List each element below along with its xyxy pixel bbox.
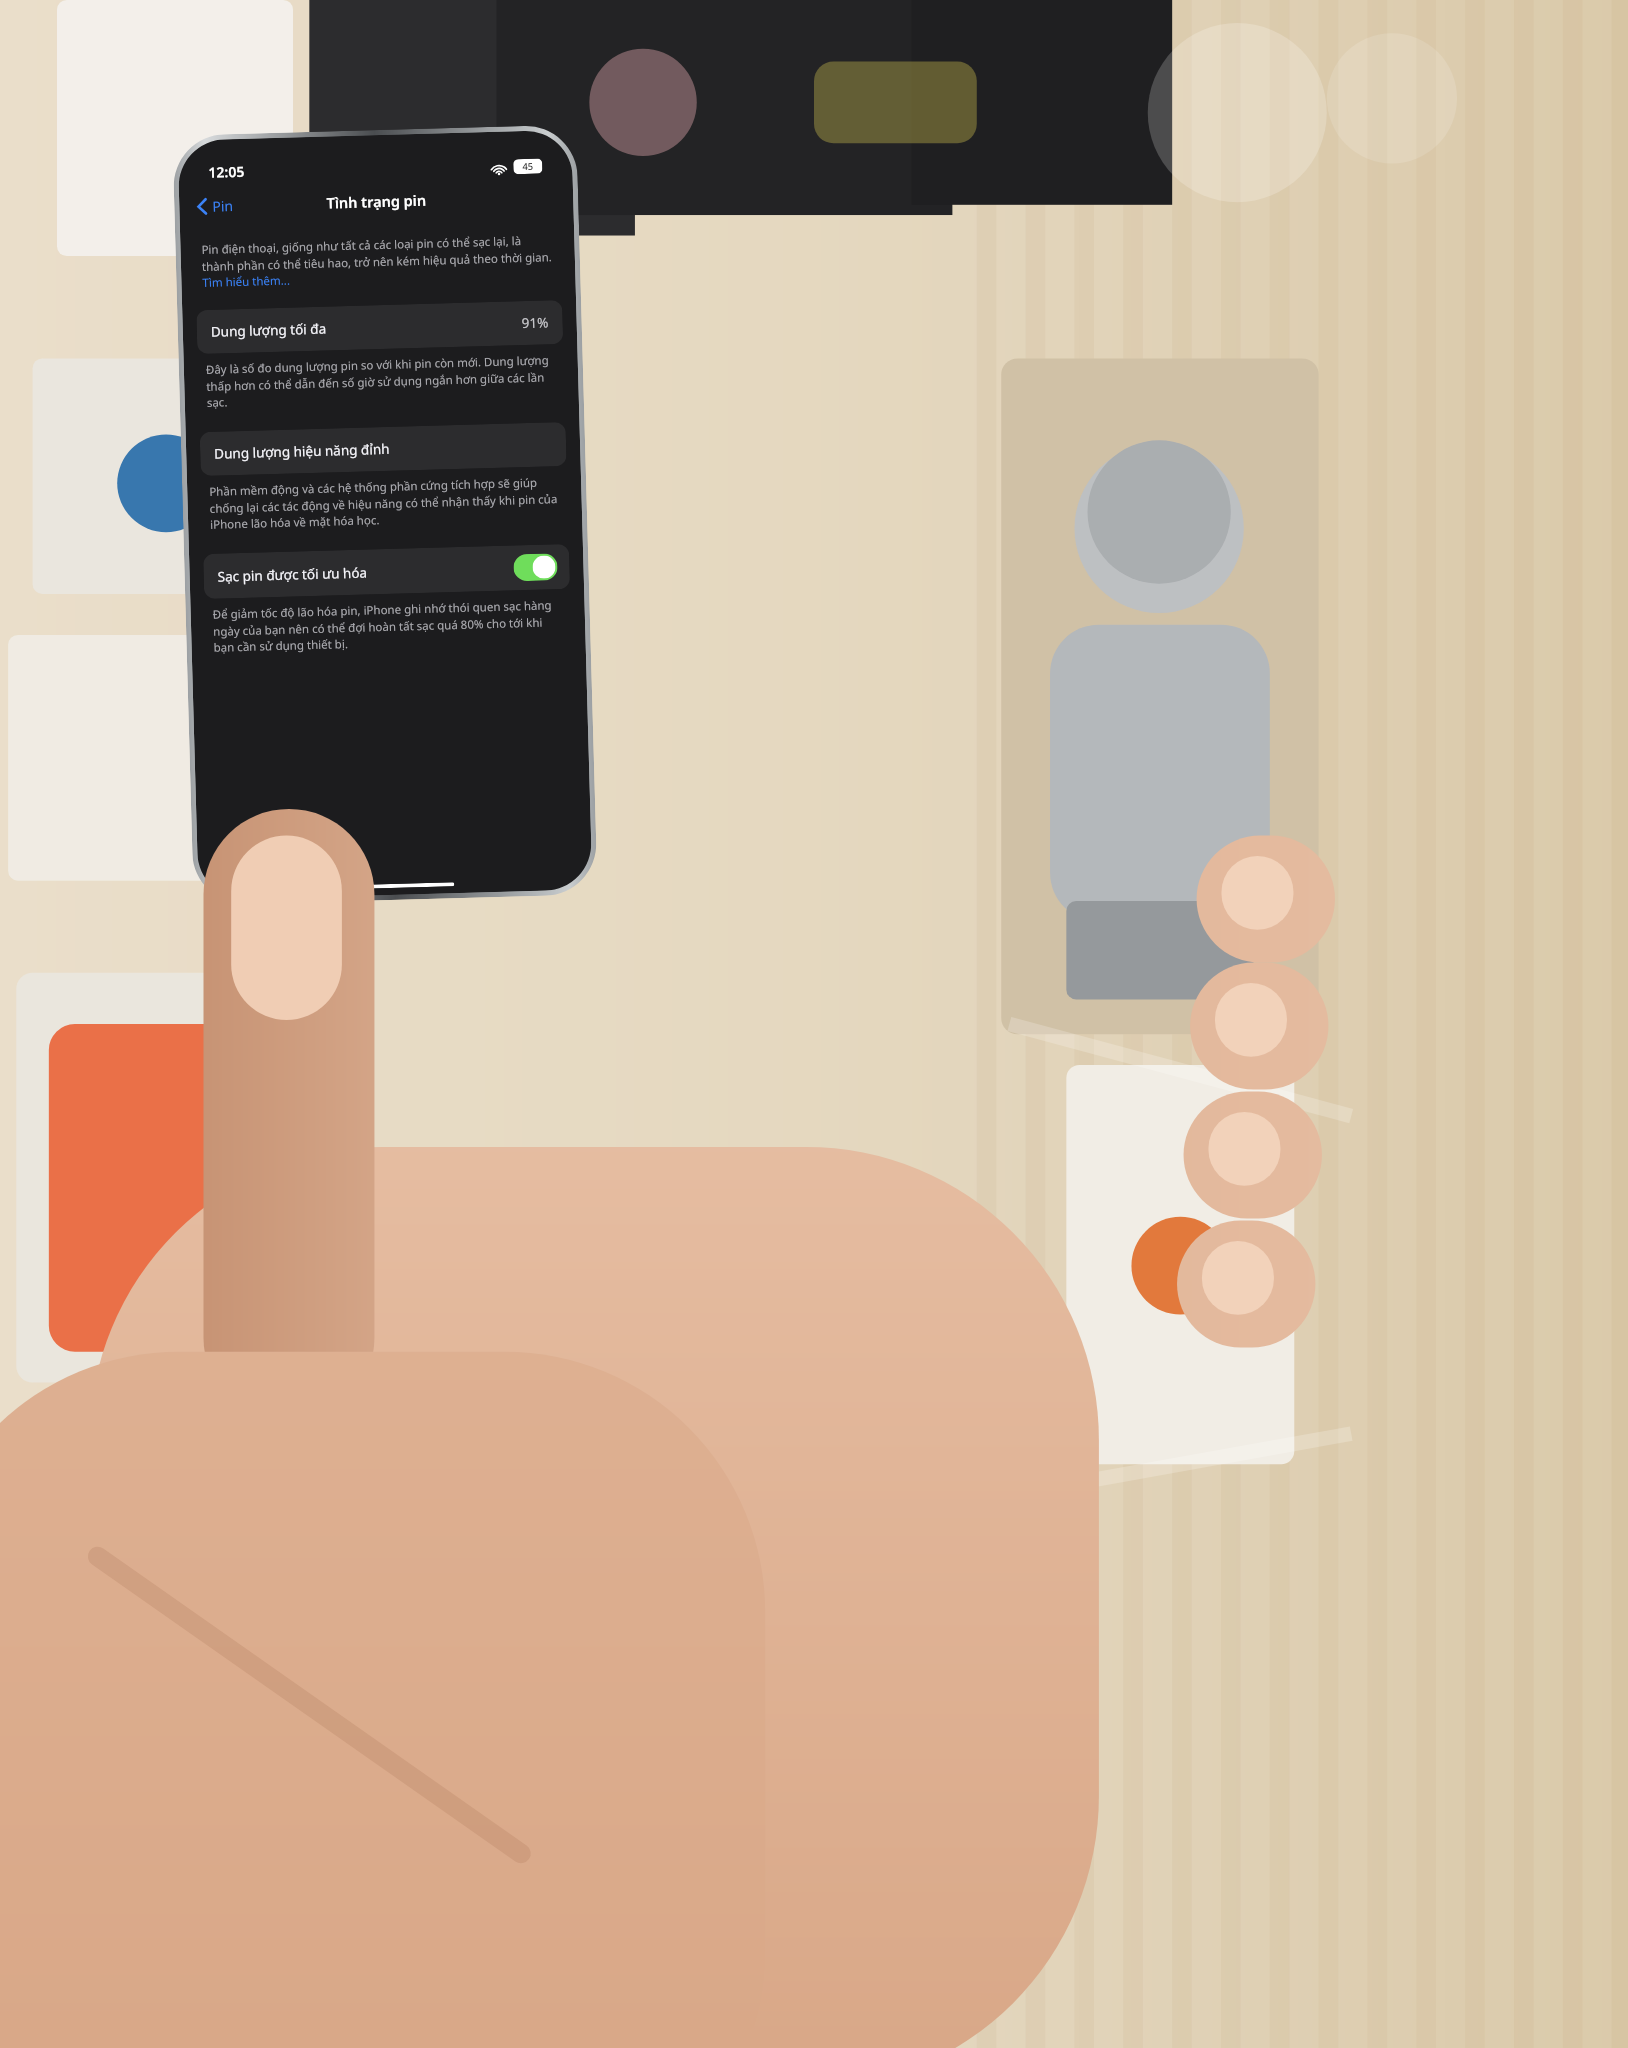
staticText: Phần mềm động và các hệ thống phần cứng … xyxy=(209,474,560,532)
button[interactable]: Pin xyxy=(193,192,238,220)
staticText: Tình trạng pin xyxy=(326,190,426,212)
staticText: Sạc pin được tối ưu hóa xyxy=(217,563,368,586)
button[interactable]: Dung lượng hiệu năng đỉnh xyxy=(200,422,567,476)
staticText: Dung lượng tối đa xyxy=(211,320,327,341)
button[interactable]: Sạc pin được tối ưu hóa, bật xyxy=(513,553,558,581)
staticText: Pin xyxy=(212,196,233,216)
staticText: Dung lượng hiệu năng đỉnh xyxy=(214,440,390,463)
staticText: 91% xyxy=(521,313,549,332)
staticText: 45 xyxy=(522,160,533,173)
staticText: Pin điện thoại, giống như tất cả các loạ… xyxy=(201,232,554,290)
staticText: Để giảm tốc độ lão hóa pin, iPhone ghi n… xyxy=(212,597,564,655)
staticText: Đây là số đo dung lượng pin so với khi p… xyxy=(206,352,557,410)
button[interactable]: Dung lượng tối đa xyxy=(196,300,563,354)
button[interactable]: Sạc pin được tối ưu hóa xyxy=(203,544,570,599)
staticText: 12:05 xyxy=(208,162,245,182)
